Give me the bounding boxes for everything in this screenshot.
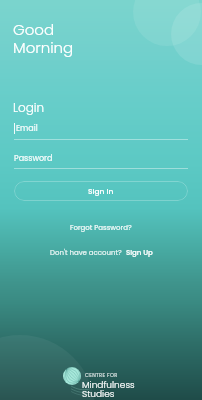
staticText: Email — [16, 123, 38, 134]
button[interactable]: Password — [0, 151, 202, 169]
button[interactable]: Email — [0, 121, 202, 139]
button[interactable]: Forgot Password? — [62, 221, 140, 235]
staticText: Don't have account? — [50, 248, 122, 258]
staticText: Password — [14, 153, 53, 164]
staticText: CENTRE FOR — [85, 372, 118, 379]
staticText: Login — [13, 99, 45, 116]
staticText: Mindfulness Studies — [82, 379, 135, 400]
staticText: Good Morning — [13, 19, 74, 58]
staticText: Sign In — [88, 186, 114, 196]
button[interactable]: Sign In — [14, 181, 188, 201]
button[interactable]: Sign Up — [126, 248, 153, 258]
